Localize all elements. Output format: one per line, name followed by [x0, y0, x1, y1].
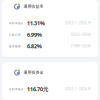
staticText: 通用收益率 [23, 4, 43, 9]
staticText: (2025.1~2026.9) [65, 21, 91, 25]
staticText: 116.70元 [27, 86, 48, 93]
staticText: 6.99% [27, 31, 42, 38]
staticText: 最高预期 [9, 45, 21, 48]
staticText: (2022~2024) [71, 33, 91, 36]
staticText: 通用投资金 [23, 70, 43, 75]
staticText: (1988~2024) [71, 44, 91, 48]
staticText: (2025.1~2026.9) [65, 87, 91, 91]
staticText: 年利率预计 [9, 22, 24, 25]
staticText: 11.31% [27, 20, 45, 27]
staticText: 已收日率 [9, 33, 21, 36]
staticText: 年利率预计 [9, 88, 24, 91]
staticText: 6.82% [27, 43, 42, 50]
